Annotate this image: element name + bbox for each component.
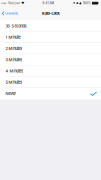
staticText: 2 Minutes (5, 46, 22, 51)
staticText: 5 Minutes (5, 80, 22, 85)
button[interactable]: 5 Minutes (0, 77, 101, 88)
button[interactable]: 2 Minutes (0, 43, 101, 54)
staticText: 1 Minute (5, 35, 20, 40)
button[interactable]: 1 Minute (0, 32, 101, 43)
button[interactable]: 4 Minutes (0, 65, 101, 77)
button[interactable]: Never (0, 88, 101, 99)
staticText: Never (5, 91, 16, 96)
staticText: Verizon (7, 1, 21, 5)
button[interactable]: 30 Seconds (0, 20, 101, 32)
staticText: 3 Minutes (5, 57, 22, 62)
button[interactable]: General (0, 8, 18, 19)
staticText: Auto-Lock (41, 11, 59, 16)
staticText: 9:41 AM (42, 1, 54, 5)
staticText: 4 Minutes (5, 69, 23, 73)
button[interactable]: 3 Minutes (0, 54, 101, 65)
staticText: 100% (83, 1, 91, 5)
staticText: 30 Seconds (5, 24, 26, 28)
staticText: General (5, 11, 18, 15)
